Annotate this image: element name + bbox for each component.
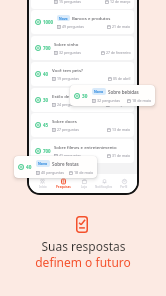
staticText: Sobre vinho (54, 41, 79, 47)
staticText: Início (39, 185, 47, 189)
staticText: 49 perguntas (62, 24, 84, 29)
staticText: 02 de junho (111, 102, 131, 107)
button[interactable]: 40 (31, 62, 134, 86)
staticText: 18 de maio (74, 170, 94, 175)
staticText: Sobre doces (52, 118, 77, 124)
button[interactable]: 40 (14, 156, 97, 178)
staticText: Novo (59, 16, 68, 20)
staticText: definem o futuro (35, 254, 131, 270)
staticText: 30 (43, 97, 49, 103)
staticText: Sobre filmes e entretenimento (54, 144, 117, 150)
staticText: 1000 (43, 19, 54, 25)
staticText: Sobre festas (52, 161, 79, 167)
staticText: Suas respostas (41, 238, 126, 254)
staticText: 700 (43, 45, 51, 51)
staticText: Novo (94, 89, 104, 94)
staticText: Notificações (95, 185, 113, 189)
staticText: 19 perguntas (57, 76, 79, 81)
staticText: 700 (43, 148, 51, 154)
staticText: 27 perguntas (57, 127, 79, 132)
staticText: 13 de maio (112, 127, 131, 132)
button[interactable]: 30 (31, 88, 134, 112)
staticText: 32 perguntas (59, 50, 81, 55)
button[interactable]: Pesquisas (53, 174, 74, 193)
staticText: 45 (43, 122, 49, 128)
staticText: 31 de maio (112, 153, 131, 158)
staticText: 15 perguntas (59, 0, 81, 4)
other: Pesquisas (76, 216, 88, 233)
staticText: 40 (26, 164, 32, 170)
staticText: 21 de maio (112, 24, 131, 29)
staticText: 05 de abril (113, 76, 131, 81)
staticText: 24 perguntas (57, 102, 79, 107)
button[interactable]: 30 (70, 85, 155, 106)
staticText: Estilo de vida (52, 93, 79, 99)
button[interactable]: 45 (31, 113, 134, 137)
staticText: 27 de fevereiro (106, 50, 131, 55)
button[interactable]: Perfil (114, 174, 134, 193)
staticText: 40 (43, 71, 49, 77)
staticText: Você tem pets? (52, 67, 83, 73)
staticText: 32 perguntas (97, 98, 121, 103)
button[interactable]: 1000 (31, 10, 134, 34)
staticText: Loja (81, 185, 87, 189)
button[interactable]: 500 (31, 0, 134, 9)
button[interactable]: Notificações (94, 174, 114, 193)
staticText: Perfil (120, 185, 128, 189)
button[interactable]: Loja (74, 174, 94, 193)
button[interactable]: Início (32, 174, 53, 193)
staticText: Novo (38, 161, 48, 166)
staticText: Sobre bebidas (108, 89, 139, 95)
staticText: 12 de março (110, 0, 131, 4)
staticText: 30 (82, 93, 88, 99)
staticText: Pesquisas (56, 185, 71, 189)
button[interactable]: 700 (31, 36, 134, 60)
staticText: 40 perguntas (41, 170, 65, 175)
staticText: 41 perguntas (59, 153, 81, 158)
staticText: 18 de maio (132, 98, 152, 103)
button[interactable]: 700 (31, 139, 134, 163)
staticText: Bancos e produtos financeiros (72, 15, 131, 21)
